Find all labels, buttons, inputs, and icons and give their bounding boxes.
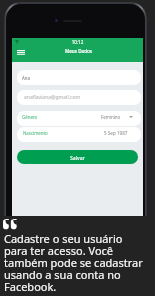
staticText: Feminino (101, 114, 121, 120)
button[interactable]: Gênero (17, 111, 141, 126)
button[interactable]: anaflaviana@gmail.com (17, 90, 141, 105)
staticText: 10:12 (12, 39, 143, 45)
button[interactable]: Salvar (17, 150, 138, 164)
staticText: Salvar (70, 154, 85, 161)
staticText: Gênero (22, 114, 38, 120)
staticText: Ana (22, 75, 30, 81)
button[interactable]: Menu (12, 44, 28, 59)
button[interactable]: Nascimento (17, 127, 141, 142)
staticText: Meus Dados (65, 48, 93, 54)
staticText: Nascimento (23, 130, 48, 136)
staticText: 5 Sep 1987 (104, 130, 128, 136)
staticText: Cadastre o seu usuário para ter acesso. … (4, 231, 143, 294)
staticText: anaflaviana@gmail.com (24, 94, 81, 101)
button[interactable]: Ana (17, 70, 141, 85)
